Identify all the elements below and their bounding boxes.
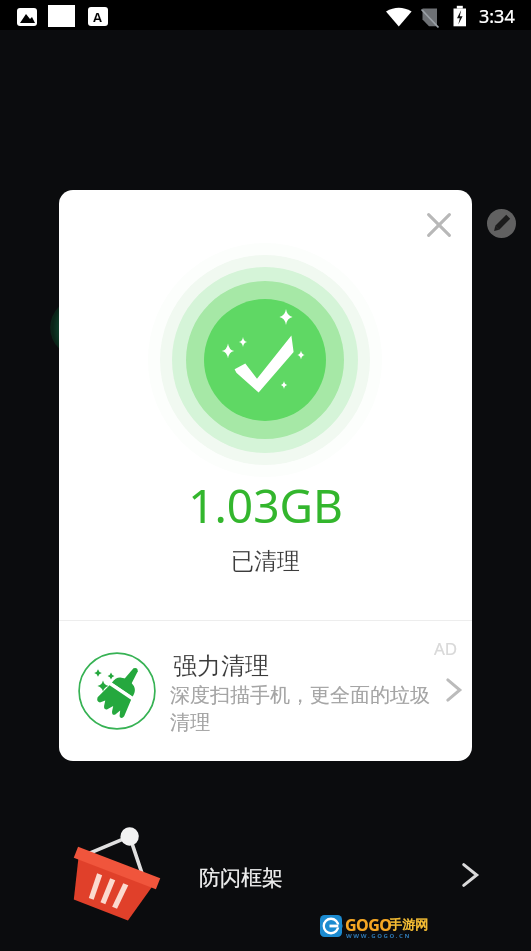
staticText: GOGO — [345, 914, 392, 936]
staticText: 防闪框架 — [199, 865, 283, 891]
staticText: 1.03GB — [188, 474, 343, 537]
staticText: 3:34 — [479, 4, 515, 29]
button[interactable]: Edit — [487, 209, 516, 238]
staticText: 深度扫描手机，更全面的垃圾清理 — [170, 683, 442, 735]
staticText: AD — [434, 637, 458, 660]
staticText: 强力清理 — [173, 651, 269, 681]
staticText: 手游网 — [389, 916, 428, 932]
button[interactable]: 防闪框架 — [0, 820, 531, 930]
other: Open — [458, 862, 484, 888]
other: Open advertisement — [443, 678, 467, 702]
staticText: W W W . G O G O . C N — [346, 932, 410, 940]
staticText: A — [93, 8, 102, 26]
button[interactable]: 强力清理 — [59, 621, 472, 761]
button[interactable]: Close — [426, 212, 452, 238]
staticText: 已清理 — [231, 547, 300, 576]
